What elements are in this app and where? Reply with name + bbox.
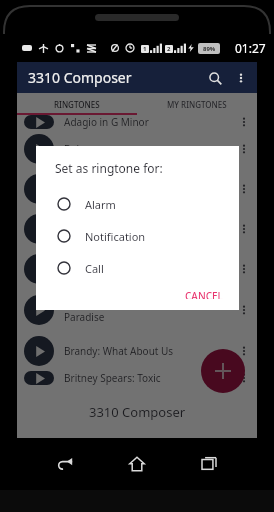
button[interactable]: Bomfunk MC's: Freestyler <box>17 169 257 209</box>
button[interactable]: Brandy feat. Ray J: Another Day in Parad… <box>17 289 257 331</box>
button[interactable]: Notification <box>36 220 239 252</box>
staticText: Notification <box>85 229 146 244</box>
button[interactable]: Alarm <box>36 188 239 220</box>
staticText: Britney Spears: Toxic <box>64 371 238 385</box>
staticText: Alarm <box>85 197 116 212</box>
button[interactable]: Search <box>202 65 228 91</box>
button[interactable]: Add ringtone <box>201 349 245 393</box>
staticText: 1 <box>143 45 147 53</box>
button[interactable]: Brandy: What About Us <box>17 331 257 371</box>
button[interactable]: Back <box>50 449 80 479</box>
button[interactable]: Bolero <box>17 129 257 169</box>
staticText: RINGTONES <box>54 99 100 110</box>
staticText: Brandy feat. Ray J: Another Day in Parad… <box>64 296 238 324</box>
staticText: 3310 Composer <box>89 403 186 421</box>
button[interactable]: Boney M: Rasputin <box>17 249 257 289</box>
staticText: 3310 Composer <box>28 68 132 87</box>
staticText: 89% <box>203 45 216 53</box>
staticText: Set as ringtone for: <box>55 160 163 176</box>
button[interactable]: Adagio in G Minor <box>17 115 257 129</box>
button[interactable]: Home <box>122 449 152 479</box>
staticText: Boney M: Rasputin <box>64 262 238 276</box>
staticText: Brandy: What About Us <box>64 344 238 358</box>
button[interactable]: Bon Jovi: It's My Life <box>17 209 257 249</box>
staticText: MY RINGTONES <box>167 99 227 110</box>
button[interactable]: MY RINGTONES <box>137 93 257 115</box>
button[interactable]: Recent apps <box>194 449 224 479</box>
staticText: Adagio in G Minor <box>64 115 238 129</box>
staticText: Bolero <box>64 142 238 156</box>
button[interactable]: RINGTONES <box>17 93 137 115</box>
staticText: 01:27 <box>235 40 266 56</box>
button[interactable]: Call <box>36 252 239 284</box>
button[interactable]: More options <box>229 66 253 90</box>
staticText: Call <box>85 261 104 276</box>
button[interactable]: CANCEL <box>177 284 231 304</box>
staticText: 2 <box>167 45 171 53</box>
button[interactable]: Britney Spears: Toxic <box>17 371 257 385</box>
staticText: CANCEL <box>185 289 223 299</box>
staticText: Bon Jovi: It's My Life <box>64 222 238 236</box>
